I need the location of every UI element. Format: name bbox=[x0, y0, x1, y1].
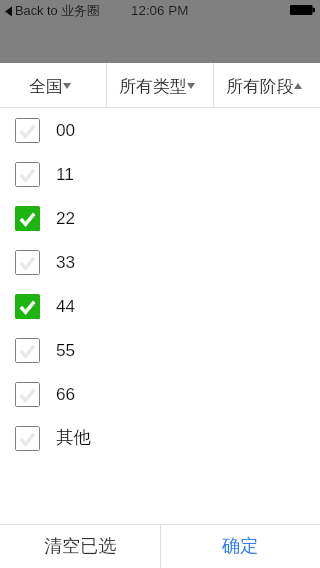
other: Battery bbox=[290, 5, 315, 15]
staticText: 66 bbox=[56, 384, 76, 403]
button[interactable]: 确定 bbox=[161, 525, 320, 568]
staticText: 其他 bbox=[56, 426, 91, 448]
staticText: 44 bbox=[56, 296, 76, 315]
button[interactable]: 11 bbox=[0, 152, 320, 196]
staticText: 22 bbox=[56, 208, 76, 227]
button[interactable]: 33 bbox=[0, 240, 320, 284]
staticText: 清空已选 bbox=[44, 535, 117, 558]
button[interactable]: 44 bbox=[0, 284, 320, 328]
staticText: 11 bbox=[56, 164, 74, 183]
button[interactable]: 66 bbox=[0, 372, 320, 416]
button[interactable]: Back to 业务圈 bbox=[5, 3, 100, 19]
button[interactable]: 22 bbox=[0, 196, 320, 240]
staticText: 全国 bbox=[29, 76, 63, 97]
staticText: 55 bbox=[56, 340, 76, 359]
button[interactable]: 清空已选 bbox=[0, 525, 160, 568]
staticText: 确定 bbox=[222, 535, 259, 558]
button[interactable]: 其他 bbox=[0, 416, 320, 460]
staticText: 33 bbox=[56, 252, 76, 271]
button[interactable]: 全国 bbox=[0, 63, 106, 108]
staticText: 所有类型 bbox=[119, 76, 187, 97]
button[interactable]: 所有类型 bbox=[107, 63, 213, 108]
button[interactable]: 55 bbox=[0, 328, 320, 372]
button[interactable]: 所有阶段 bbox=[214, 63, 320, 108]
button[interactable]: 00 bbox=[0, 108, 320, 152]
staticText: 所有阶段 bbox=[226, 76, 294, 97]
staticText: Back to 业务圈 bbox=[15, 3, 100, 19]
staticText: 12:06 PM bbox=[131, 3, 189, 18]
staticText: 00 bbox=[56, 120, 76, 139]
